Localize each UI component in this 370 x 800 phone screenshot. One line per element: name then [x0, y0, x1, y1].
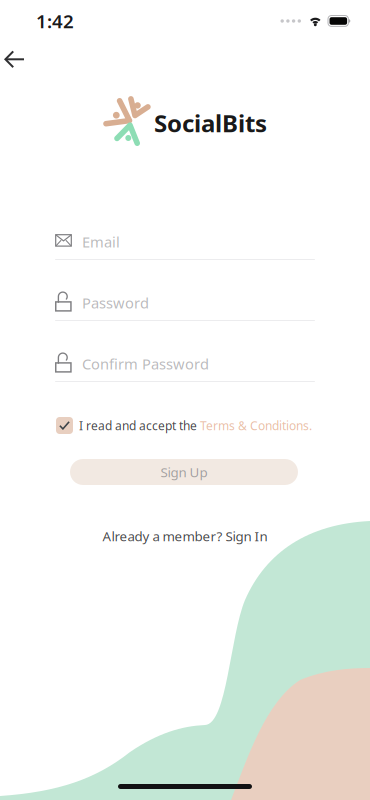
- staticText: Email: [82, 232, 120, 251]
- button[interactable]: Already a member? Sign In: [0, 528, 370, 544]
- button[interactable]: Terms & Conditions.: [200, 417, 312, 433]
- button[interactable]: Sign Up: [70, 459, 298, 485]
- staticText: Terms & Conditions.: [200, 417, 312, 433]
- staticText: Already a member? Sign In: [102, 527, 267, 545]
- staticText: SocialBits: [154, 107, 267, 139]
- staticText: Confirm Password: [82, 354, 209, 373]
- button[interactable]: Accept terms and conditions: [56, 417, 73, 434]
- staticText: Sign Up: [160, 463, 207, 481]
- button[interactable]: Back: [0, 39, 41, 80]
- staticText: I read and accept the: [79, 417, 200, 433]
- staticText: Password: [82, 293, 149, 312]
- staticText: 1:42: [36, 9, 74, 33]
